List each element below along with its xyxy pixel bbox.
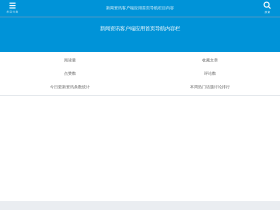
staticText: 新闻资讯客户端应用首页导航内容栏 — [100, 25, 180, 32]
staticText: 评论数 — [204, 71, 216, 76]
staticText: 收藏文章 — [202, 58, 218, 62]
staticText: 阅读量 — [64, 58, 76, 62]
staticText: 点赞数 — [64, 71, 76, 76]
button[interactable]: 菜单 — [0, 0, 25, 16]
staticText: 搜索 — [264, 11, 270, 14]
staticText: 新闻资讯客户端应用首页导航栏目内容 — [106, 5, 174, 10]
button[interactable]: 搜索 — [255, 0, 280, 16]
staticText: 本周热门话题讨论排行 — [190, 84, 230, 89]
staticText: 今日更新资讯条数统计 — [50, 84, 90, 89]
staticText: 栏目分类 — [6, 10, 18, 13]
